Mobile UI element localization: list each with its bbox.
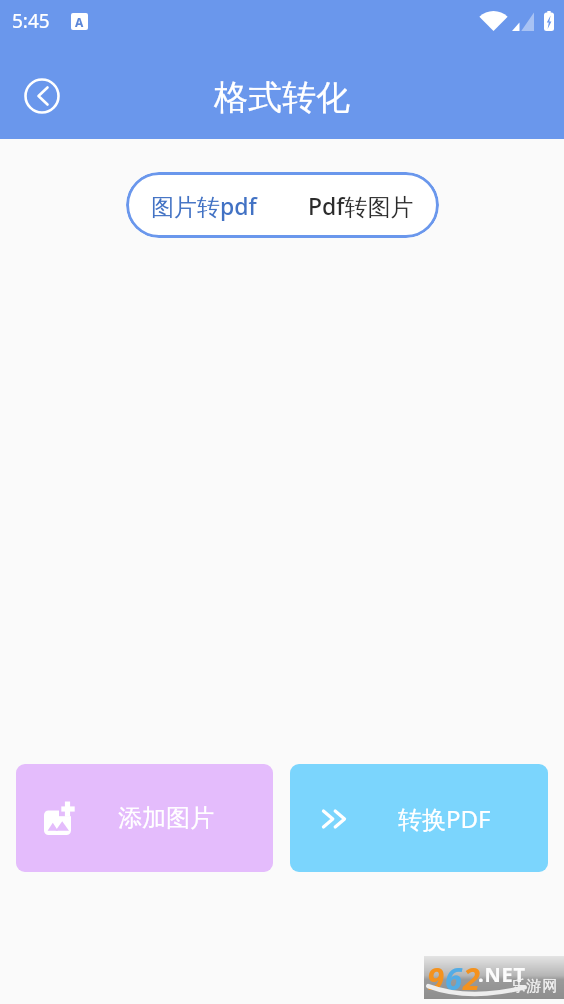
button[interactable]: 图片转pdf <box>126 172 282 238</box>
staticText: 图片转pdf <box>151 190 257 221</box>
staticText: 2 <box>463 957 481 999</box>
staticText: 转换PDF <box>398 802 491 835</box>
staticText: 9 <box>427 957 445 999</box>
staticText: 5:45 <box>12 8 50 34</box>
staticText: 6 <box>445 957 463 999</box>
button[interactable]: 转换PDF <box>290 764 548 872</box>
staticText: 格式转化 <box>214 76 350 119</box>
button[interactable]: Back <box>24 78 60 114</box>
staticText: A <box>75 14 84 30</box>
staticText: .NET <box>478 961 526 988</box>
staticText: 乐游网 <box>510 977 558 996</box>
staticText: 添加图片 <box>118 803 214 833</box>
button[interactable]: Pdf转图片 <box>282 172 439 238</box>
button[interactable]: 添加图片 <box>16 764 273 872</box>
staticText: Pdf转图片 <box>308 190 414 221</box>
